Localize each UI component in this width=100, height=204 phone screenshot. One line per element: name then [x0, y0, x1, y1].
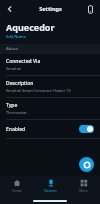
button[interactable]: Type [0, 98, 100, 119]
button[interactable]: Device [83, 2, 97, 16]
staticText: Aquecedor [6, 21, 55, 33]
button[interactable]: Connected Via [0, 54, 100, 75]
staticText: Edit Name [6, 34, 26, 39]
staticText: Thermostat [6, 110, 27, 115]
staticText: Connected Via [6, 58, 41, 65]
staticText: Smartmi Smart Convector Heater 1S [6, 88, 71, 93]
staticText: Home [12, 188, 22, 193]
button[interactable]: More [67, 177, 100, 195]
button[interactable]: Enabled [0, 120, 100, 138]
button[interactable]: Power [79, 157, 94, 172]
button[interactable]: Description [0, 76, 100, 97]
button[interactable]: Back [3, 2, 17, 16]
staticText: About [6, 46, 19, 52]
staticText: Enabled [6, 126, 79, 133]
button[interactable]: Edit Name [6, 34, 26, 39]
staticText: Settings [39, 5, 62, 12]
staticText: Type [6, 102, 18, 109]
staticText: Description [6, 80, 34, 87]
button[interactable]: Home [0, 177, 34, 195]
staticText: More [79, 188, 88, 193]
staticText: Smartmi [6, 66, 22, 71]
staticText: Devices [44, 188, 57, 193]
button[interactable]: Devices [34, 177, 67, 195]
